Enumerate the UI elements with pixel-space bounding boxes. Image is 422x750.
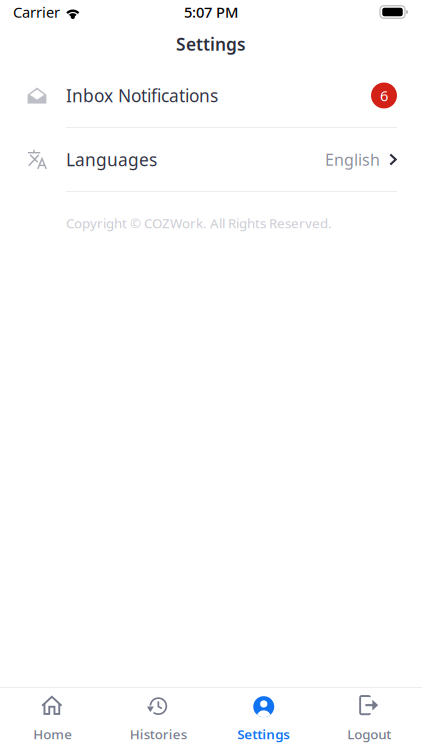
button[interactable]: Settings	[211, 688, 316, 750]
staticText: English	[325, 149, 380, 170]
staticText: Inbox Notifications	[66, 84, 218, 107]
button[interactable]: Home	[0, 688, 105, 750]
staticText: 5:07 PM	[184, 2, 238, 22]
staticText: 6	[380, 86, 388, 105]
staticText: Carrier	[13, 2, 60, 22]
staticText: Settings	[176, 32, 246, 55]
staticText: Histories	[130, 725, 187, 743]
button[interactable]: Histories	[105, 688, 211, 750]
button[interactable]: Inbox Notifications	[0, 64, 422, 128]
button[interactable]: Languages	[0, 128, 422, 192]
staticText: Copyright © COZWork. All Rights Reserved…	[66, 214, 332, 232]
staticText: Home	[33, 725, 72, 743]
staticText: Logout	[347, 725, 391, 743]
staticText: Settings	[237, 725, 290, 743]
button[interactable]: Logout	[316, 688, 422, 750]
staticText: Languages	[66, 148, 157, 171]
